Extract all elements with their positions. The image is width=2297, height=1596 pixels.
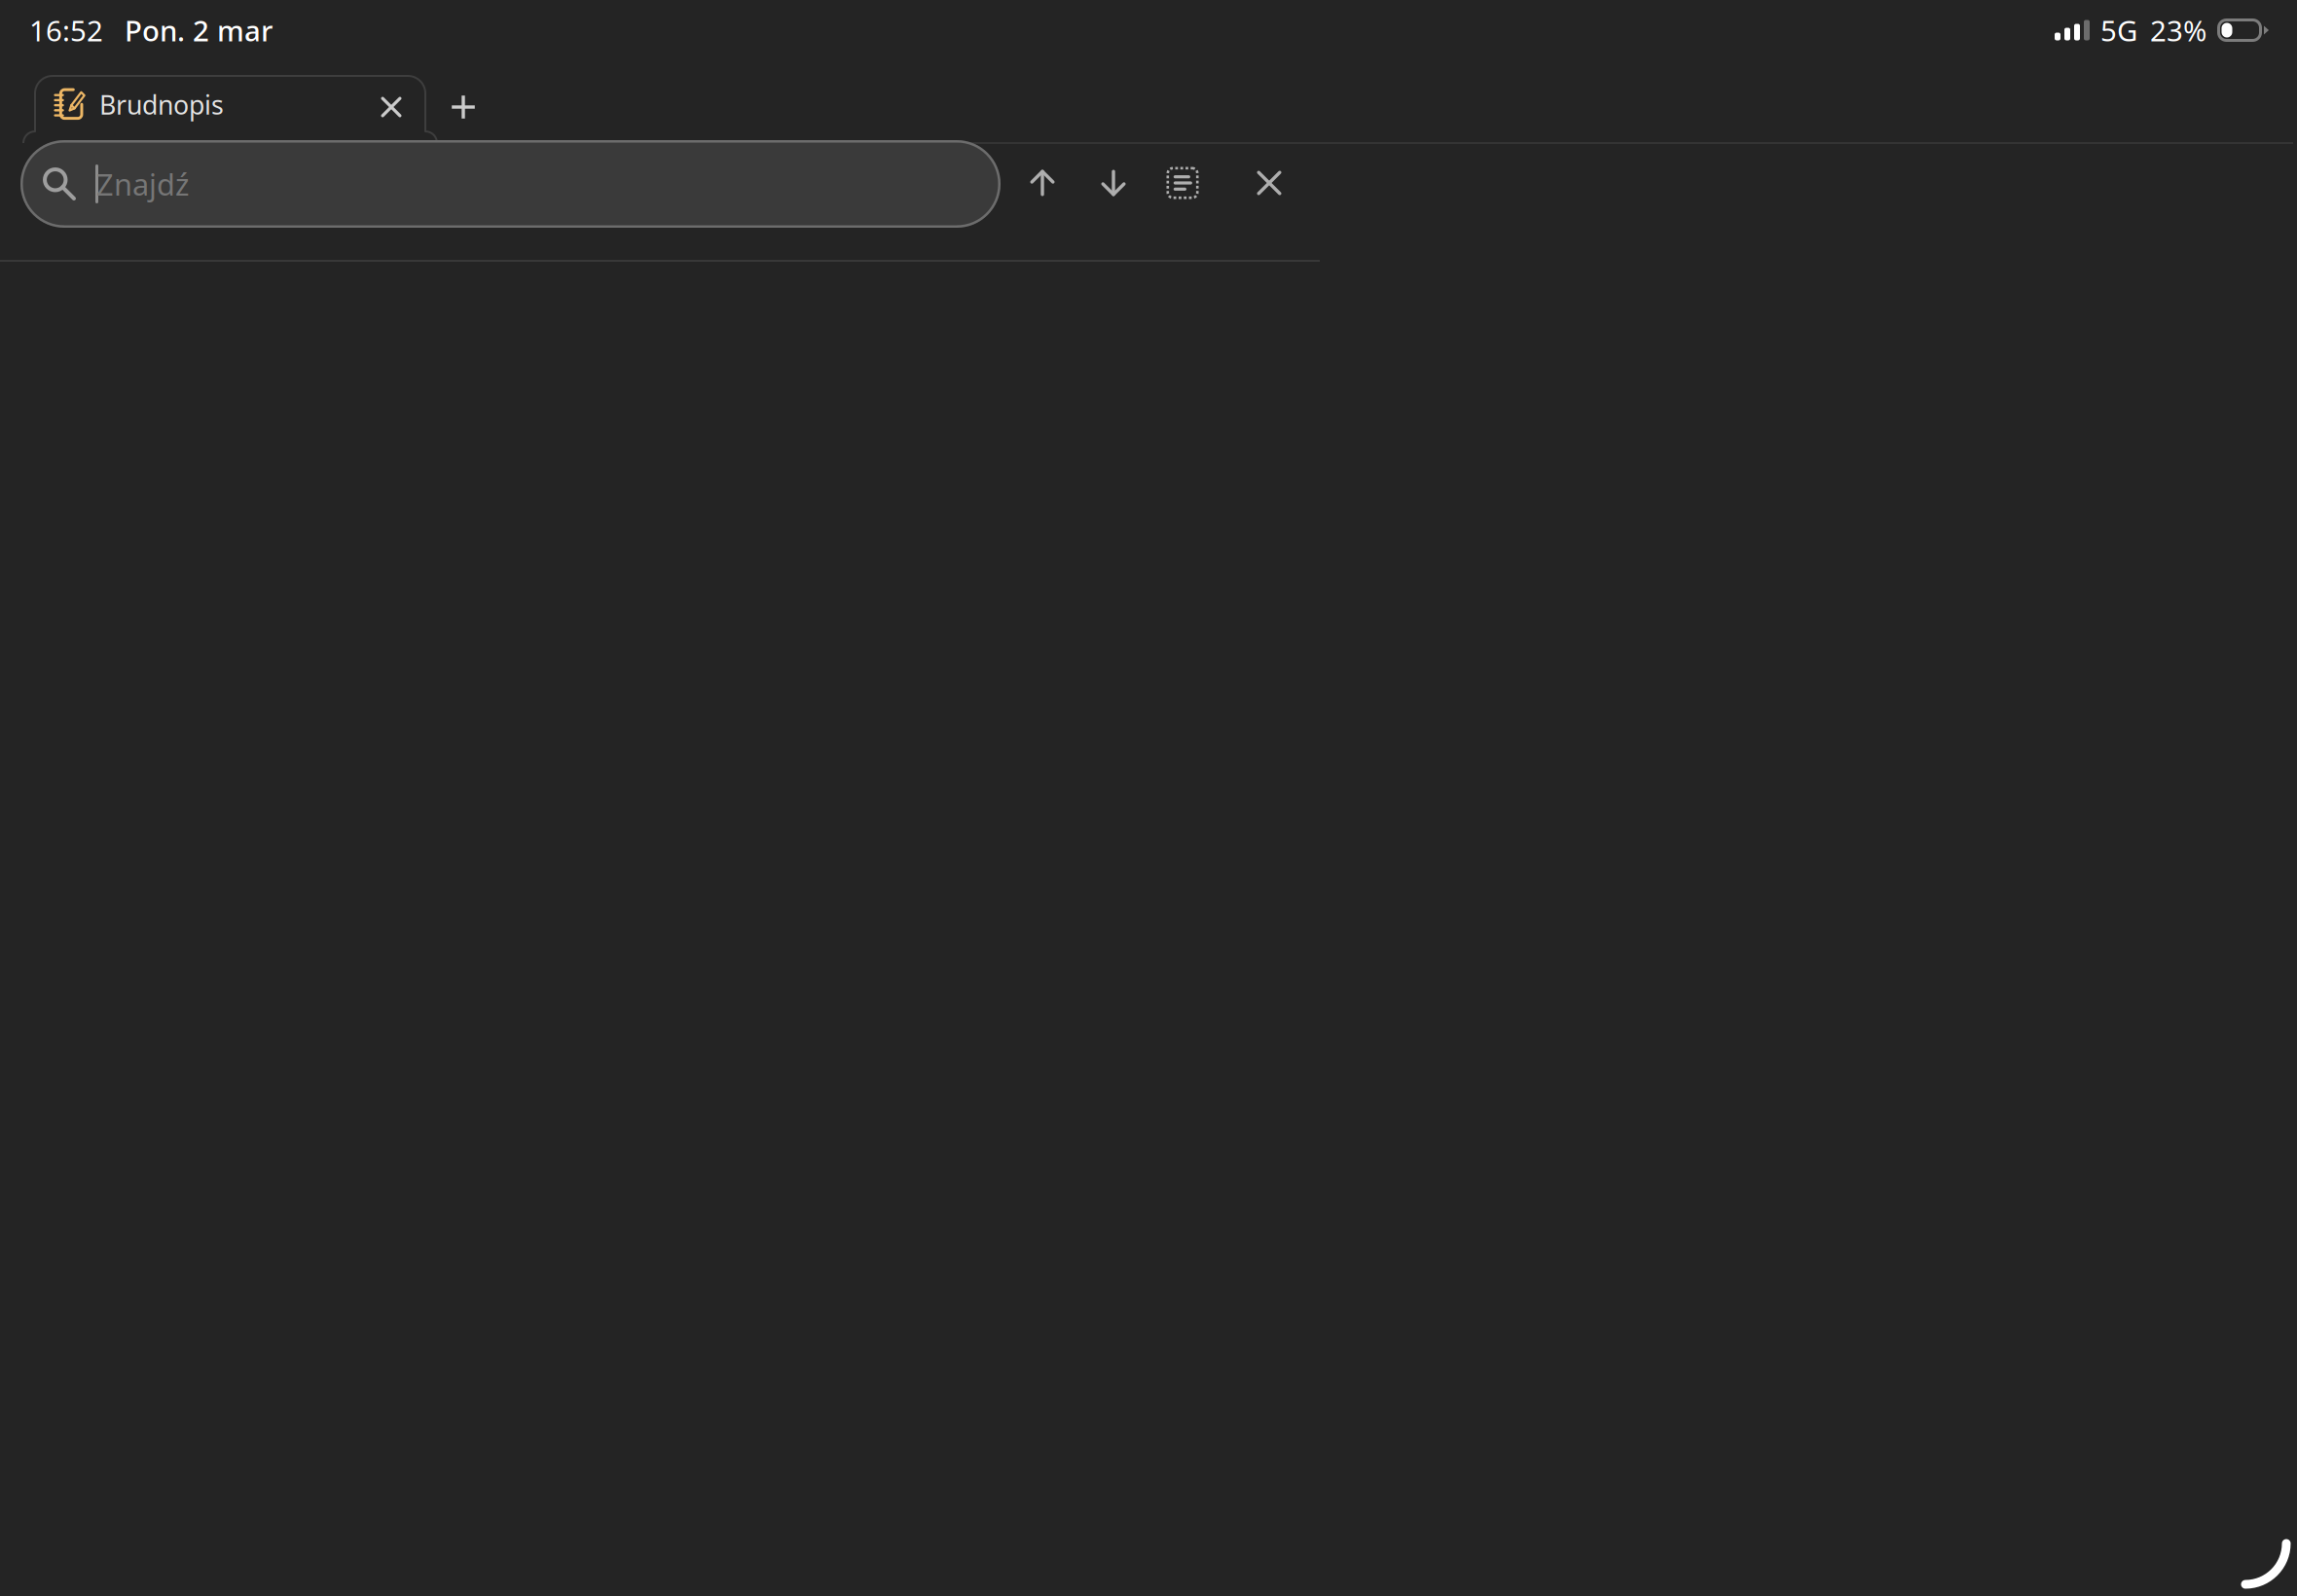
- button[interactable]: Select all matches: [1151, 148, 1214, 218]
- button[interactable]: New tab: [435, 79, 492, 135]
- staticText: Brudnopis: [99, 87, 224, 122]
- button[interactable]: Find next: [1082, 148, 1145, 218]
- button[interactable]: Find previous: [1011, 148, 1074, 218]
- staticText: 5G: [2100, 11, 2137, 49]
- staticText: 16:52: [29, 11, 103, 49]
- button[interactable]: Close tab: [364, 80, 419, 134]
- button[interactable]: Close find bar: [1238, 148, 1300, 218]
- button[interactable]: Brudnopis: [23, 76, 437, 143]
- staticText: 23%: [2150, 11, 2206, 49]
- staticText: Znajdź: [96, 164, 189, 204]
- staticText: Pon. 2 mar: [125, 11, 273, 49]
